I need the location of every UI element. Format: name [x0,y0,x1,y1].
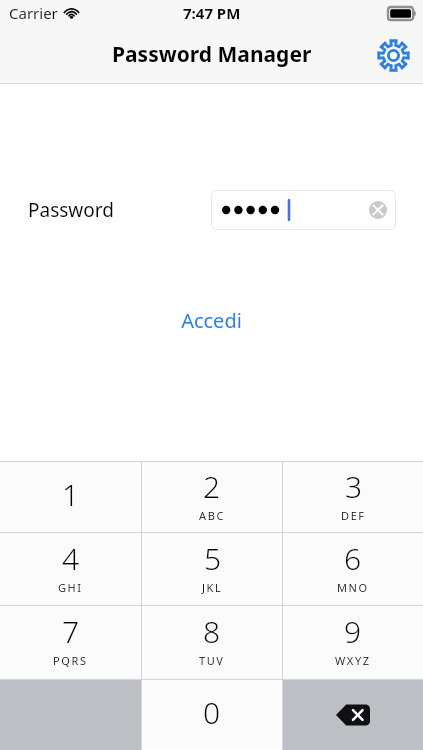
staticText: Accedi [181,307,242,334]
staticText: 2 [203,466,221,507]
staticText: TUV [199,653,225,668]
staticText: 8 [203,611,221,652]
button[interactable]: 6 [283,533,423,605]
button[interactable]: Clear text [211,190,396,230]
staticText: Carrier [9,3,58,23]
button[interactable]: Delete [283,680,423,750]
staticText: Password [28,197,114,223]
staticText: 1 [62,474,80,515]
button[interactable]: 0 [142,680,282,750]
button[interactable]: 7 [0,606,141,679]
staticText: 0 [203,692,221,733]
staticText: 5 [204,538,222,579]
staticText: 7:47 PM [183,3,241,23]
staticText: 4 [62,538,80,579]
staticText: GHI [58,580,83,595]
staticText: 6 [344,538,362,579]
staticText: ABC [199,508,225,523]
staticText: JKL [202,580,223,595]
button[interactable]: 5 [142,533,282,605]
button[interactable]: 9 [283,606,423,679]
button[interactable]: 8 [142,606,282,679]
staticText: DEF [341,508,366,523]
staticText: 7 [62,611,80,652]
staticText: WXYZ [335,653,371,668]
button[interactable]: 4 [0,533,141,605]
button[interactable]: Settings [371,33,415,77]
staticText: 9 [344,611,362,652]
button[interactable]: 2 [142,462,282,532]
staticText: Password Manager [112,40,312,69]
button[interactable]: Clear text [367,199,389,221]
button[interactable]: Accedi [167,302,256,339]
staticText: PQRS [53,653,88,668]
staticText: 3 [345,466,363,507]
staticText: MNO [337,580,369,595]
button[interactable]: 1 [0,462,141,532]
button[interactable]: 3 [283,462,423,532]
